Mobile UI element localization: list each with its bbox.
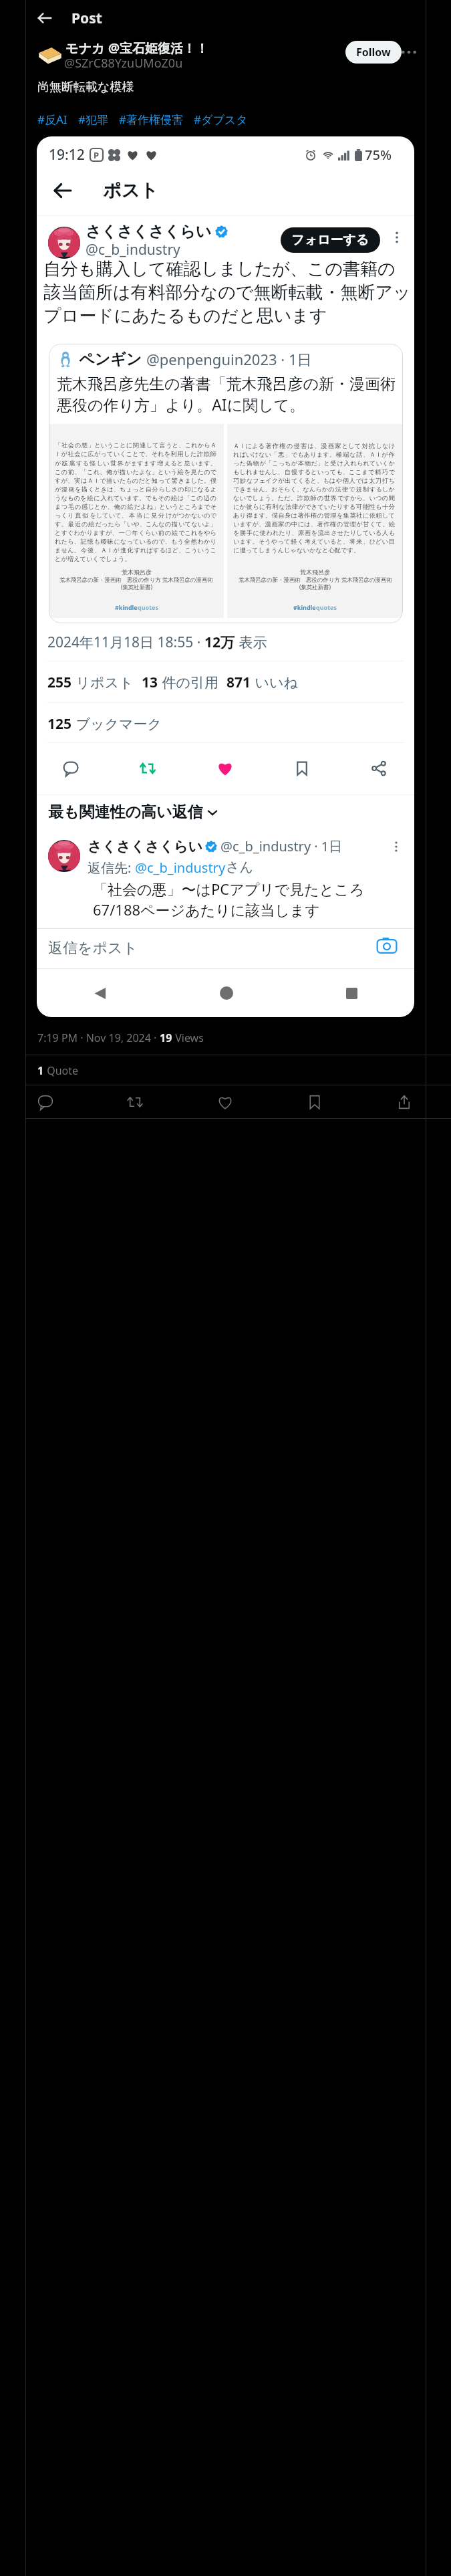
- button[interactable]: Reply: [35, 1092, 55, 1112]
- staticText: 荒木飛呂彦の新・漫画術 悪役の作り方 荒木飛呂彦の漫画術: [59, 576, 213, 583]
- staticText: ブックマーク: [72, 714, 162, 734]
- button[interactable]: @c_b_industry: [135, 859, 226, 877]
- staticText: 表示: [235, 633, 267, 652]
- button[interactable]: Repost: [138, 758, 158, 778]
- button[interactable]: Bookmark: [305, 1092, 325, 1112]
- button[interactable]: More options: [390, 840, 403, 853]
- staticText: Follow: [356, 45, 391, 60]
- staticText: @SZrC88YzuUMoZ0u: [64, 55, 183, 72]
- staticText: 1: [37, 1063, 44, 1078]
- staticText: さん: [226, 859, 253, 875]
- staticText: Post: [71, 9, 102, 28]
- staticText: 871: [227, 673, 251, 692]
- staticText: ポスト: [103, 179, 158, 202]
- staticText: quotes: [316, 603, 337, 611]
- button[interactable]: Reply: [61, 758, 81, 778]
- staticText: @c_b_industry · 1日: [220, 837, 343, 855]
- button[interactable]: More options: [390, 230, 404, 245]
- staticText: Quote: [44, 1063, 79, 1078]
- staticText: 荒木飛呂彦: [300, 568, 330, 576]
- button[interactable]: 19:12: [37, 136, 414, 1017]
- staticText: ペンギン: [79, 350, 142, 369]
- button[interactable]: #ダブスタ: [194, 112, 248, 127]
- staticText: #kindle: [293, 603, 316, 611]
- staticText: 13: [142, 673, 158, 692]
- button[interactable]: Like: [215, 758, 235, 778]
- button[interactable]: Bookmark: [292, 758, 312, 778]
- staticText: さくさくさくらい: [88, 838, 202, 855]
- staticText: 返信先:: [88, 859, 135, 877]
- staticText: (集英社新書): [299, 583, 331, 591]
- staticText: 荒木飛呂彦: [122, 568, 152, 576]
- staticText: 75%: [365, 146, 392, 164]
- button[interactable]: Add photo: [376, 935, 398, 956]
- button[interactable]: Back: [51, 179, 74, 202]
- button[interactable]: #反AI: [37, 112, 67, 127]
- staticText: 19:12: [49, 145, 85, 165]
- staticText: 「社会の悪」ということに関連して言うと、これからＡＩが社会に広がっていくことで、…: [55, 441, 216, 563]
- staticText: 荒木飛呂彦の新・漫画術 悪役の作り方 荒木飛呂彦の漫画術: [239, 576, 392, 583]
- button[interactable]: Follow: [345, 41, 402, 64]
- staticText: 19: [160, 1031, 172, 1045]
- staticText: 12万: [204, 633, 235, 652]
- staticText: フォローする: [291, 232, 369, 248]
- staticText: @宝石姫復活！！: [108, 39, 209, 57]
- button[interactable]: #犯罪: [78, 112, 108, 127]
- staticText: 返信をポスト: [48, 939, 138, 958]
- button[interactable]: Like: [215, 1092, 235, 1112]
- staticText: 2024年11月18日 18:55 ·: [47, 633, 204, 652]
- staticText: @c_b_industry: [86, 240, 180, 259]
- button[interactable]: Back: [35, 8, 55, 28]
- staticText: モナカ: [65, 39, 108, 57]
- staticText: P: [94, 149, 100, 161]
- button[interactable]: #著作権侵害: [119, 112, 183, 127]
- button[interactable]: 1: [37, 1063, 79, 1078]
- button[interactable]: More options: [401, 44, 417, 60]
- button[interactable]: Share: [394, 1092, 414, 1112]
- staticText: ＡＩによる著作権の侵害は、漫画家として対抗しなければいけない「悪」でもあります。…: [233, 441, 395, 554]
- staticText: 最も関連性の高い返信: [48, 802, 203, 822]
- staticText: (集英社新書): [121, 583, 152, 591]
- staticText: @penpenguin2023 · 1日: [146, 349, 312, 369]
- staticText: Views: [172, 1031, 204, 1045]
- staticText: 「社会の悪」〜はPCアプリで見たところ67/188ページあたりに該当します: [93, 879, 394, 920]
- staticText: 荒木飛呂彦先生の著書「荒木飛呂彦の新・漫画術悪役の作り方」より。AIに関して。: [57, 374, 398, 415]
- button[interactable]: ペンギン: [49, 344, 403, 623]
- staticText: 尚無断転載な模様: [37, 80, 134, 95]
- staticText: 125: [47, 714, 72, 734]
- staticText: いいね: [251, 673, 298, 692]
- staticText: quotes: [138, 603, 158, 611]
- button[interactable]: Repost: [125, 1092, 145, 1112]
- staticText: 自分も購入して確認しましたが、この書籍の該当箇所は有料部分なので無断転載・無断ア…: [43, 258, 411, 327]
- staticText: 255: [47, 673, 72, 692]
- staticText: #kindle: [115, 603, 138, 611]
- staticText: 2024年11月18日 18:55 ·: [47, 633, 204, 652]
- button[interactable]: フォローする: [281, 227, 380, 253]
- staticText: 7:19 PM · Nov 19, 2024 ·: [37, 1031, 160, 1045]
- staticText: リポスト: [72, 673, 134, 692]
- staticText: さくさくさくらい: [86, 222, 212, 241]
- button[interactable]: Share: [369, 758, 389, 778]
- staticText: 件の引用: [158, 673, 218, 692]
- button[interactable]: 最も関連性の高い返信: [48, 802, 218, 822]
